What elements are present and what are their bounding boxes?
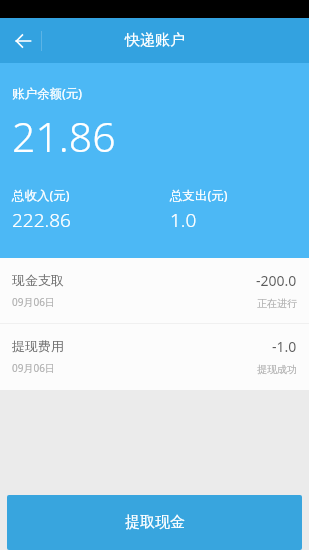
staticText: 总收入(元) [12,187,70,204]
staticText: 09月06日 [12,361,55,375]
staticText: 1.0 [170,207,197,233]
button[interactable]: 提现费用 [0,324,309,389]
staticText: 提现成功 [257,363,297,376]
button[interactable]: 提取现金 [7,495,302,550]
staticText: 总支出(元) [170,187,228,204]
staticText: 提现费用 [12,338,64,354]
staticText: 正在进行 [257,297,297,310]
staticText: 账户余额(元) [12,85,83,102]
staticText: 提取现金 [125,513,185,532]
staticText: 21.86 [12,108,116,164]
button[interactable]: 现金支取 [0,258,309,323]
button[interactable]: Back [0,18,45,63]
staticText: -200.0 [256,271,297,290]
staticText: 222.86 [12,207,71,233]
staticText: 现金支取 [12,272,64,288]
staticText: 快递账户 [125,31,185,50]
staticText: 09月06日 [12,295,55,309]
staticText: -1.0 [272,337,297,356]
